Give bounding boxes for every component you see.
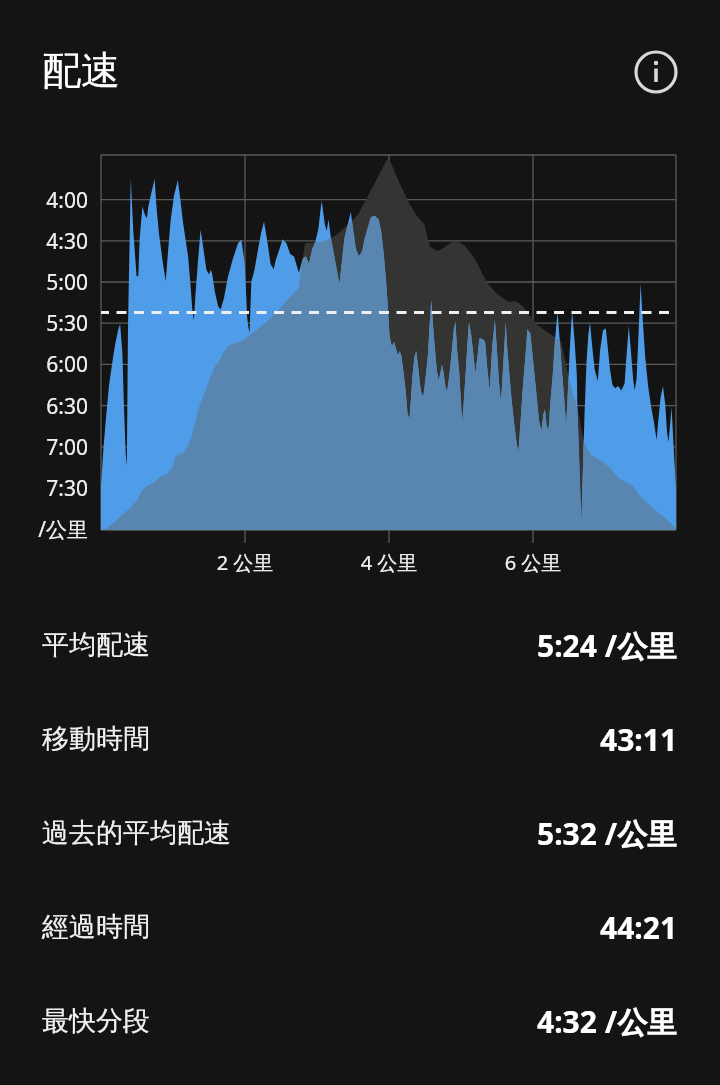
staticText: 43:11 [600, 719, 678, 760]
staticText: 7:30 [10, 474, 88, 503]
staticText: 經過時間 [42, 910, 150, 944]
staticText: 5:24 /公里 [537, 625, 678, 666]
button[interactable]: 平均配速 [0, 598, 720, 692]
button[interactable]: 過去的平均配速 [0, 786, 720, 880]
button[interactable]: Info [626, 42, 686, 102]
staticText: 4:30 [10, 227, 88, 256]
staticText: 5:00 [10, 268, 88, 297]
button[interactable]: 最快分段 [0, 974, 720, 1068]
staticText: 6 公里 [473, 549, 593, 576]
staticText: /公里 [10, 515, 88, 544]
staticText: 6:30 [10, 392, 88, 421]
staticText: 7:00 [10, 433, 88, 462]
button[interactable]: 經過時間 [0, 880, 720, 974]
staticText: 配速 [42, 46, 120, 95]
staticText: 4:32 /公里 [537, 1001, 678, 1042]
staticText: 6:00 [10, 350, 88, 379]
staticText: 2 公里 [185, 549, 305, 576]
staticText: 4 公里 [329, 549, 449, 576]
staticText: 4:00 [10, 186, 88, 215]
staticText: 44:21 [600, 907, 678, 948]
staticText: 最快分段 [42, 1004, 150, 1038]
staticText: 平均配速 [42, 628, 150, 662]
staticText: 移動時間 [42, 722, 150, 756]
staticText: 5:30 [10, 309, 88, 338]
staticText: 5:32 /公里 [537, 813, 678, 854]
staticText: 過去的平均配速 [42, 816, 231, 850]
button[interactable]: 移動時間 [0, 692, 720, 786]
